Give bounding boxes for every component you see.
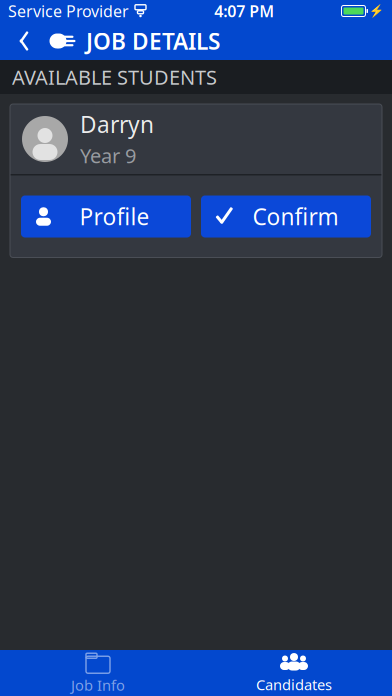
button[interactable]: Candidates [196,650,392,696]
staticText: JOB DETAILS [86,26,220,56]
staticText: Job Info [71,675,125,695]
staticText: ⚡ [369,4,384,18]
staticText: Darryn [80,109,154,139]
staticText: Year 9 [80,142,136,169]
button[interactable]: Confirm [201,195,371,237]
button[interactable]: Back [4,22,44,60]
button[interactable]: Job Info [0,650,196,696]
staticText: Service Provider [8,0,129,22]
staticText: Candidates [256,675,332,694]
staticText: AVAILABLE STUDENTS [12,64,217,90]
button[interactable]: Profile [21,195,191,237]
staticText: 4:07 PM [214,0,274,22]
staticText: Profile [79,201,149,231]
staticText: Confirm [252,201,338,231]
